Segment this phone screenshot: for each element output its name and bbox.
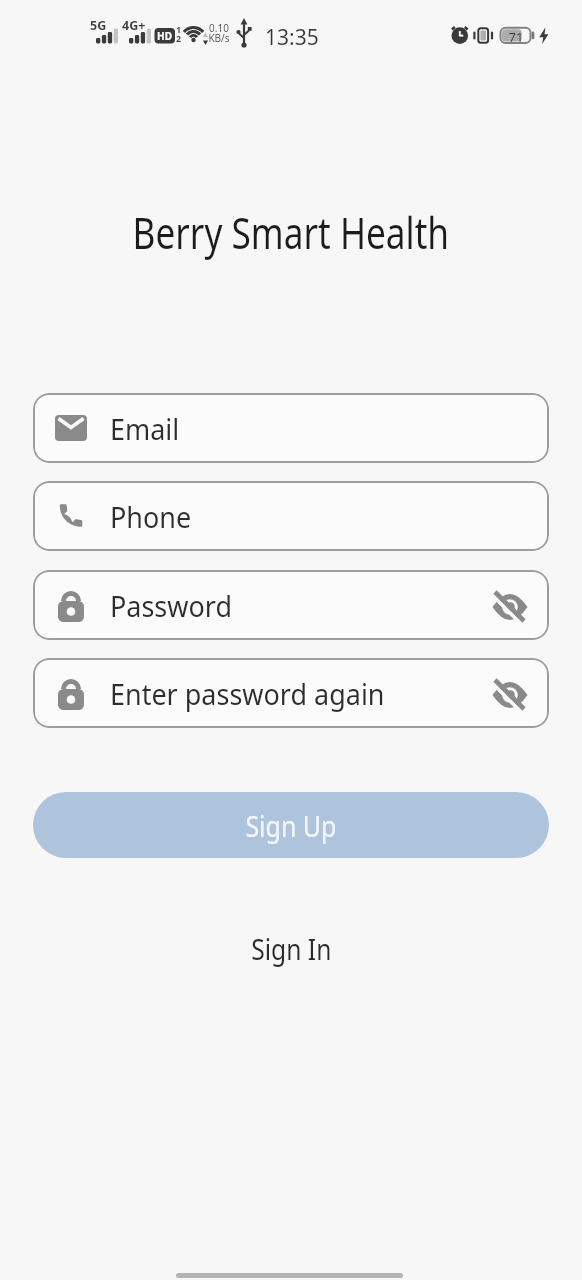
button[interactable]: Enter password again	[33, 658, 549, 728]
button[interactable]: Email	[33, 393, 549, 463]
staticText: Enter password again	[110, 674, 385, 713]
button[interactable]: Sign Up	[33, 792, 549, 858]
staticText: HD	[157, 29, 172, 43]
button[interactable]: Phone	[33, 481, 549, 551]
staticText: Phone	[110, 497, 192, 536]
staticText: 2	[176, 32, 182, 44]
staticText: 71	[503, 28, 529, 46]
staticText: Sign In	[251, 929, 332, 968]
staticText: 4G+	[122, 17, 146, 34]
staticText: KB/s	[206, 31, 232, 45]
staticText: 0.10	[206, 21, 232, 35]
staticText: Sign Up	[245, 806, 337, 845]
staticText: Email	[110, 409, 180, 448]
staticText: Password	[110, 586, 233, 625]
staticText: 5G	[90, 17, 107, 34]
button[interactable]: Sign In	[201, 925, 381, 971]
staticText: 13:35	[265, 23, 319, 52]
staticText: 1	[176, 23, 182, 35]
button[interactable]: Password	[33, 570, 549, 640]
staticText: Berry Smart Health	[133, 202, 449, 262]
